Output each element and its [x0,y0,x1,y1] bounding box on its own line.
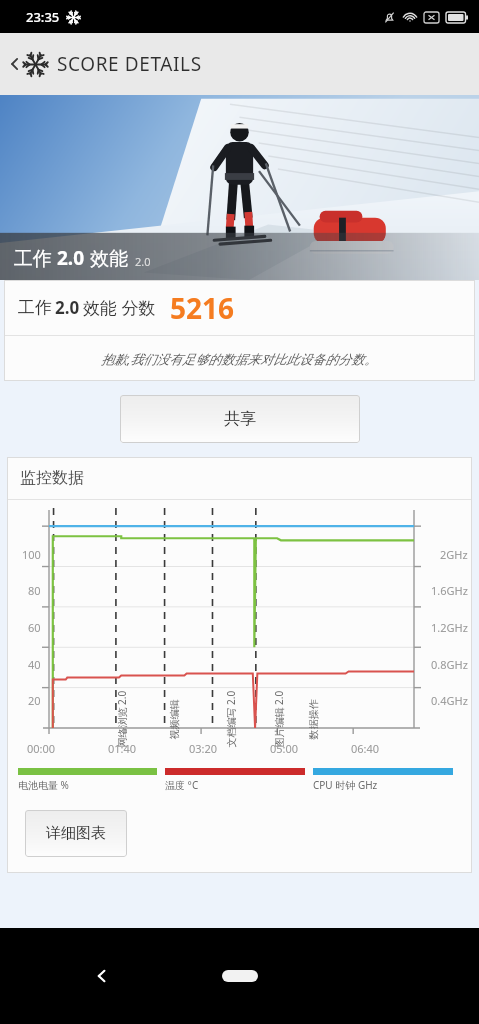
staticText: 100 [22,547,41,562]
staticText: 温度 °C [165,778,199,792]
other: Back [6,55,24,73]
button[interactable]: 共享 [120,395,360,443]
button[interactable]: 工作 [4,280,475,335]
button[interactable]: Home [222,970,258,982]
staticText: 文档编写 2.0 [223,690,237,747]
staticText: 01:40 [108,741,137,756]
staticText: 20 [28,693,41,708]
staticText: 监控数据 [20,468,84,488]
staticText: 1.2GHz [431,620,468,635]
staticText: SCORE DETAILS [57,51,202,77]
staticText: 1.6GHz [431,583,468,598]
staticText: 网络浏览 2.0 [114,690,128,747]
staticText: 23:35 [26,8,60,26]
staticText: 03:20 [189,741,218,756]
staticText: 2GHz [440,547,468,562]
staticText: 5216 [170,289,235,327]
staticText: 效能 [85,245,128,271]
button[interactable]: Back [0,33,479,95]
staticText: CPU 时钟 GHz [313,778,378,792]
staticText: 05:00 [270,741,299,756]
staticText: 80 [28,583,41,598]
staticText: 06:40 [351,741,380,756]
staticText: 效能 分数 [83,296,156,319]
staticText: 40 [28,657,41,672]
staticText: 工作 [14,245,57,271]
staticText: 0.4GHz [431,693,468,708]
staticText: 2.0 [57,245,85,271]
staticText: 抱歉,我们没有足够的数据来对比此设备的分数。 [101,350,378,368]
staticText: 视频编辑 [167,699,180,739]
staticText: 工作 [18,297,52,318]
staticText: 0.8GHz [431,657,468,672]
staticText: 00:00 [27,741,56,756]
staticText: 图片编辑 2.0 [271,690,285,747]
staticText: 共享 [224,409,256,429]
staticText: 60 [28,620,41,635]
staticText: 2.0 [55,296,80,319]
staticText: 数据操作 [306,699,319,739]
staticText: 电池电量 % [18,778,69,792]
staticText: 2.0 [135,254,151,269]
button[interactable]: Back [92,966,112,986]
button[interactable]: 详细图表 [25,810,127,857]
staticText: 详细图表 [46,824,106,843]
